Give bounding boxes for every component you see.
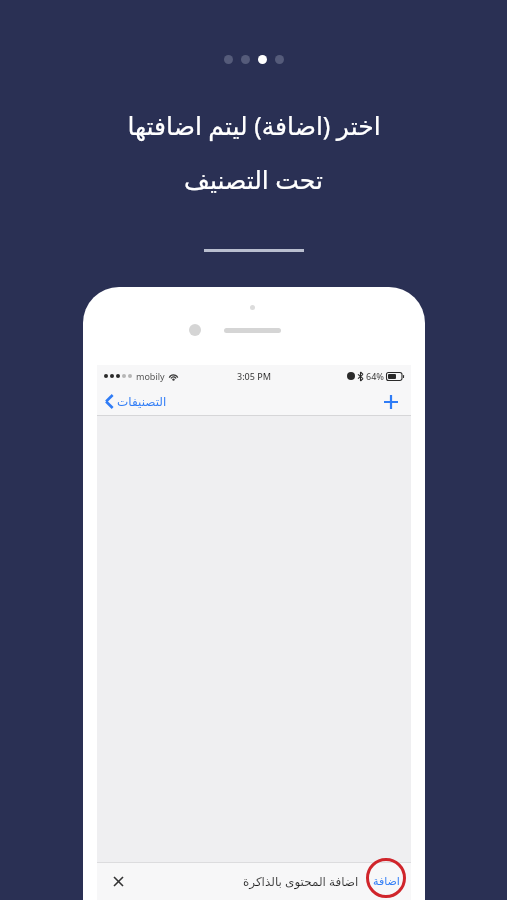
button[interactable]	[258, 55, 267, 64]
staticText: اضافة	[373, 875, 400, 888]
staticText: اضافة المحتوى بالذاكرة	[243, 873, 359, 889]
staticText: 3:05 PM	[237, 370, 271, 382]
button[interactable]: Close	[107, 870, 129, 892]
button[interactable]	[275, 55, 284, 64]
staticText: mobily	[136, 370, 165, 382]
button[interactable]: التصنيفات	[105, 394, 167, 409]
button[interactable]: اضافة	[369, 864, 403, 898]
staticText: التصنيفات	[117, 395, 167, 409]
button[interactable]	[224, 55, 233, 64]
button[interactable]: Add	[379, 390, 403, 414]
button[interactable]	[241, 55, 250, 64]
staticText: تحت التصنيف	[184, 162, 323, 196]
staticText: 64%	[366, 370, 384, 382]
staticText: اختر (اضافة) ليتم اضافتها	[127, 108, 381, 142]
